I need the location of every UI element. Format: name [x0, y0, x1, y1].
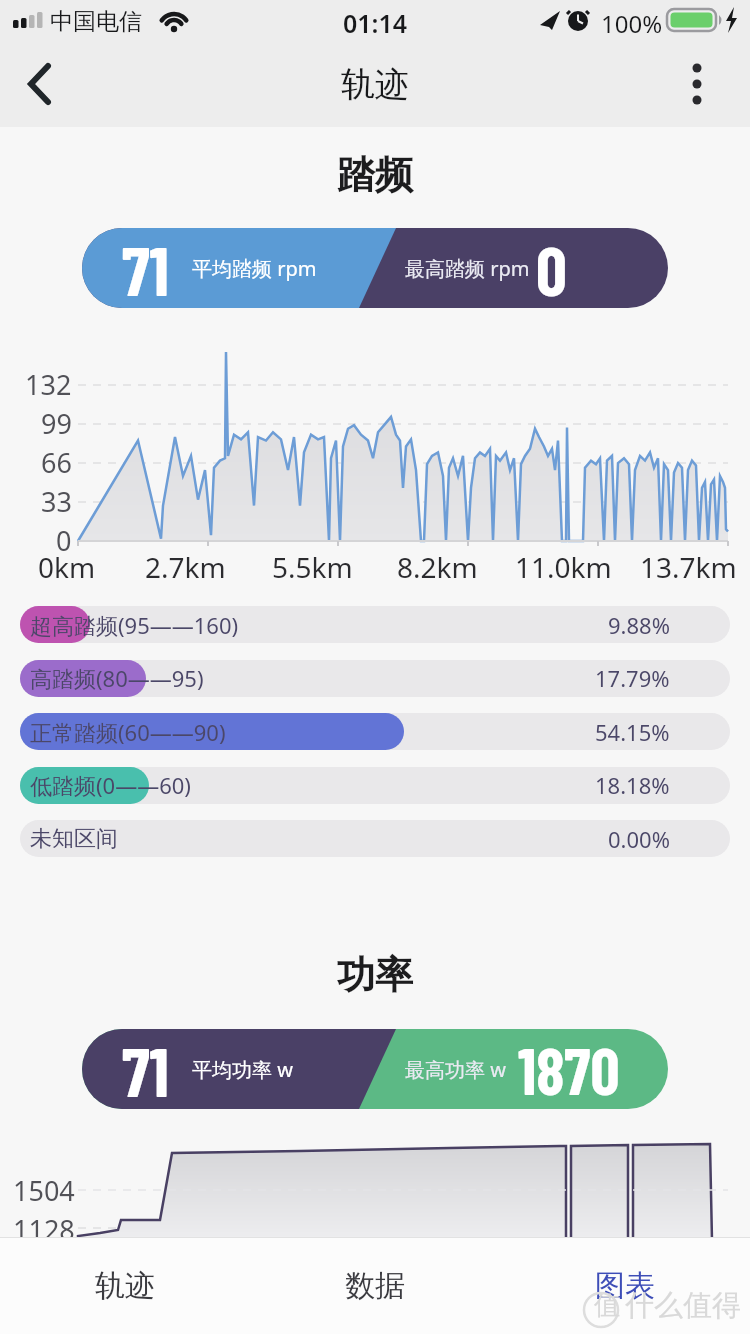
staticText: 18.18% [595, 770, 670, 800]
staticText: 中国电信 [50, 7, 142, 35]
staticText: 71 [122, 228, 169, 308]
staticText: 踏频 [337, 151, 413, 199]
staticText: 最高功率 w [405, 1056, 506, 1083]
button[interactable] [665, 50, 735, 120]
staticText: 54.15% [595, 717, 670, 747]
button[interactable] [10, 50, 80, 120]
staticText: 平均功率 w [192, 1056, 293, 1083]
staticText: 数据 [345, 1267, 405, 1305]
staticText: 11.0km [515, 548, 612, 580]
staticText: 图表 [595, 1267, 655, 1305]
staticText: 1504 [13, 1172, 75, 1208]
staticText: 132 [25, 366, 72, 402]
button[interactable]: 71 [82, 228, 668, 308]
staticText: 平均踏频 rpm [192, 255, 317, 282]
staticText: 71 [122, 1029, 169, 1109]
staticText: 8.2km [397, 548, 478, 580]
staticText: 值 [594, 1289, 620, 1322]
staticText: 13.7km [640, 548, 737, 580]
staticText: 99 [41, 405, 72, 441]
button[interactable]: 图表 [550, 1237, 700, 1334]
button[interactable]: 轨迹 [50, 1237, 200, 1334]
staticText: 高踏频(80——95) [30, 663, 204, 693]
staticText: 轨迹 [95, 1267, 155, 1305]
staticText: 1870 [518, 1031, 620, 1108]
staticText: 1128 [13, 1211, 75, 1247]
staticText: 低踏频(0——60) [30, 770, 191, 800]
staticText: 未知区间 [30, 825, 118, 853]
staticText: 17.79% [595, 663, 670, 693]
staticText: 9.88% [608, 610, 670, 640]
staticText: 66 [41, 444, 72, 480]
staticText: 0 [536, 228, 567, 308]
staticText: 正常踏频(60——90) [30, 717, 226, 747]
staticText: 功率 [337, 951, 413, 999]
staticText: 5.5km [272, 548, 353, 580]
staticText: 01:14 [343, 6, 408, 36]
button[interactable]: 数据 [300, 1237, 450, 1334]
staticText: 轨迹 [341, 63, 409, 106]
staticText: 0.00% [608, 824, 670, 854]
staticText: 33 [41, 483, 72, 519]
staticText: 0 [56, 522, 72, 558]
staticText: 最高踏频 rpm [405, 255, 530, 282]
staticText: 100% [601, 7, 663, 35]
staticText: 什么值得买 [625, 1287, 750, 1324]
staticText: 超高踏频(95——160) [30, 610, 239, 640]
staticText: 2.7km [145, 548, 226, 580]
button[interactable]: 71 [82, 1029, 668, 1109]
staticText: 0km [38, 548, 96, 580]
